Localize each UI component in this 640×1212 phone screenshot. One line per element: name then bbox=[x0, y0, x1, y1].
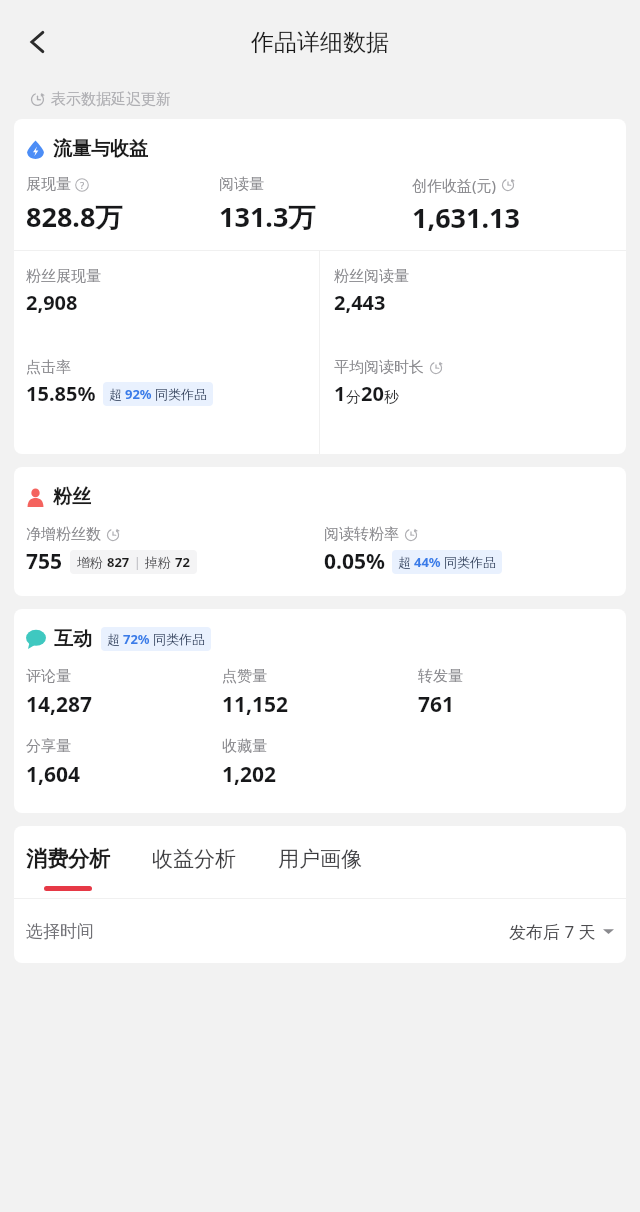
staticText: 72 bbox=[175, 553, 190, 571]
button[interactable]: 发布后 7 天 bbox=[509, 920, 614, 943]
staticText: 作品详细数据 bbox=[251, 28, 389, 57]
staticText: 掉粉 bbox=[145, 554, 171, 570]
button[interactable]: Back bbox=[10, 14, 66, 70]
staticText: 超 bbox=[109, 386, 122, 402]
staticText: 收益分析 bbox=[152, 846, 236, 872]
staticText: 消费分析 bbox=[26, 846, 110, 872]
staticText: 创作收益(元) bbox=[412, 175, 497, 195]
staticText: 点击率 bbox=[26, 358, 71, 377]
button[interactable]: 收益分析 bbox=[152, 846, 236, 872]
staticText: 14,287 bbox=[26, 690, 93, 719]
staticText: 选择时间 bbox=[26, 921, 94, 942]
staticText: 1,631.13 bbox=[412, 199, 520, 236]
staticText: 1 bbox=[334, 380, 346, 407]
staticText: 11,152 bbox=[222, 690, 289, 719]
staticText: 828.8万 bbox=[26, 198, 123, 235]
staticText: 收藏量 bbox=[222, 737, 267, 756]
staticText: 秒 bbox=[384, 388, 399, 407]
staticText: 评论量 bbox=[26, 667, 71, 686]
staticText: 1,202 bbox=[222, 760, 277, 789]
staticText: 阅读量 bbox=[219, 175, 264, 194]
staticText: 净增粉丝数 bbox=[26, 525, 101, 544]
staticText: | bbox=[134, 554, 141, 570]
staticText: 发布后 7 天 bbox=[509, 920, 596, 943]
staticText: 755 bbox=[26, 547, 63, 576]
staticText: 同类作品 bbox=[444, 554, 496, 570]
staticText: 超 bbox=[398, 554, 411, 570]
staticText: 粉丝展现量 bbox=[26, 267, 101, 286]
staticText: 分享量 bbox=[26, 737, 71, 756]
button[interactable]: 消费分析 bbox=[26, 846, 110, 891]
staticText: 表示数据延迟更新 bbox=[51, 90, 171, 109]
button[interactable]: 用户画像 bbox=[278, 846, 362, 872]
staticText: 2,443 bbox=[334, 289, 386, 316]
staticText: 增粉 bbox=[77, 554, 103, 570]
staticText: 流量与收益 bbox=[53, 137, 148, 161]
staticText: ? bbox=[80, 179, 85, 192]
staticText: 0.05% bbox=[324, 547, 385, 576]
staticText: 761 bbox=[418, 690, 455, 719]
staticText: 1,604 bbox=[26, 760, 81, 789]
staticText: 同类作品 bbox=[155, 386, 207, 402]
staticText: 展现量 bbox=[26, 175, 71, 194]
staticText: 粉丝 bbox=[53, 485, 91, 509]
staticText: 阅读转粉率 bbox=[324, 525, 399, 544]
staticText: 20 bbox=[361, 380, 384, 407]
staticText: 15.85% bbox=[26, 380, 96, 407]
staticText: 超 bbox=[107, 631, 120, 647]
staticText: 用户画像 bbox=[278, 846, 362, 872]
staticText: 点赞量 bbox=[222, 667, 267, 686]
staticText: 44% bbox=[414, 553, 441, 571]
staticText: 2,908 bbox=[26, 289, 78, 316]
staticText: 同类作品 bbox=[153, 631, 205, 647]
staticText: 分 bbox=[346, 388, 361, 407]
staticText: 粉丝阅读量 bbox=[334, 267, 409, 286]
staticText: 互动 bbox=[54, 627, 92, 651]
staticText: 转发量 bbox=[418, 667, 463, 686]
staticText: 92% bbox=[125, 385, 152, 403]
staticText: 827 bbox=[107, 553, 130, 571]
staticText: 平均阅读时长 bbox=[334, 358, 424, 377]
staticText: 72% bbox=[123, 630, 150, 648]
staticText: 131.3万 bbox=[219, 198, 316, 235]
